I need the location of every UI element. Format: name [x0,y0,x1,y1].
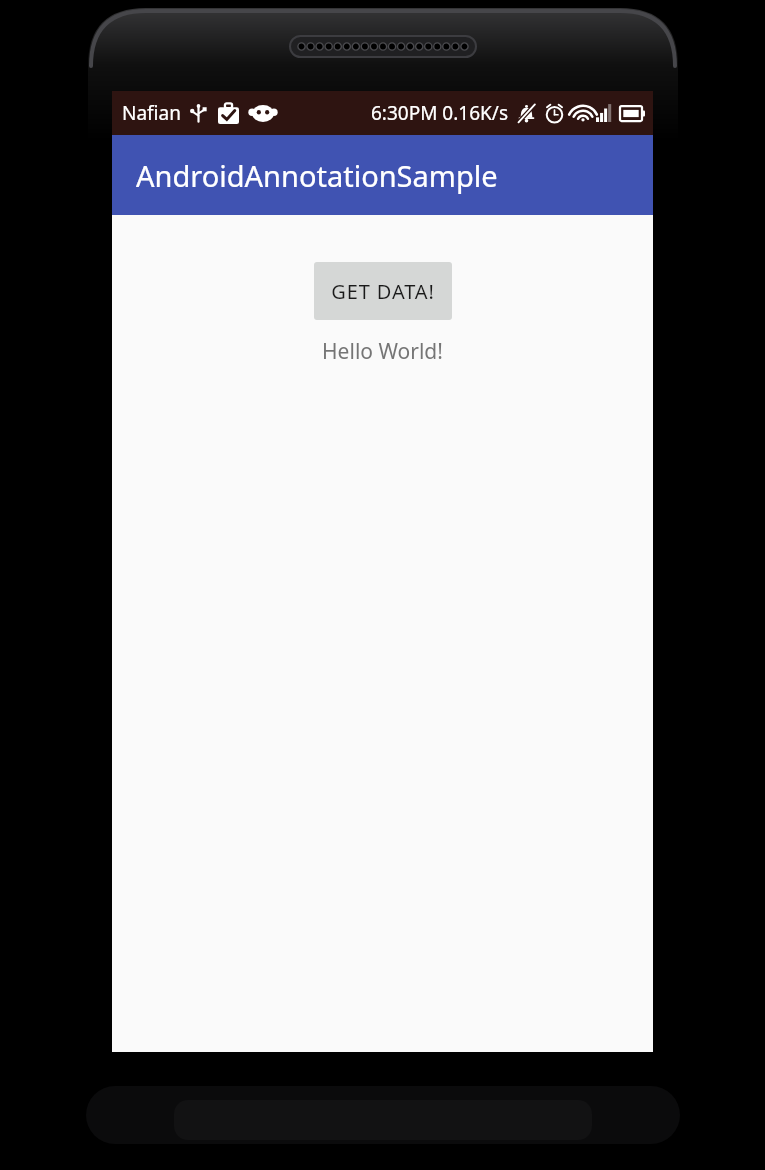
button[interactable]: GET DATA! [314,262,452,320]
staticText: AndroidAnnotationSample [136,156,498,195]
staticText: 6:30PM 0.16K/s [371,100,508,126]
staticText: GET DATA! [331,278,435,305]
staticText: Nafian [122,100,181,126]
staticText: Hello World! [322,337,443,366]
